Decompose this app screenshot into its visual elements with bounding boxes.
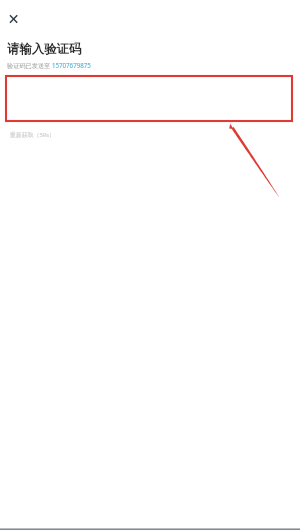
staticText: 重新获取（59s） — [10, 131, 55, 139]
button[interactable]: Verification code input field — [6, 76, 292, 121]
staticText: 验证码已发送至 15707679875 — [7, 61, 91, 69]
button[interactable]: Close — [1, 6, 26, 31]
button[interactable]: 重新获取（59s） — [7, 128, 58, 142]
staticText: 请输入验证码 — [7, 41, 82, 57]
